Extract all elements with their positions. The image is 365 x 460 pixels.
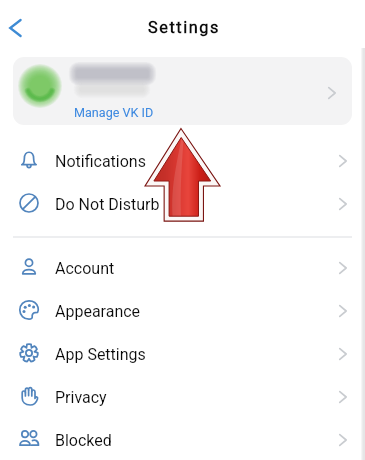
staticText: Account bbox=[55, 259, 115, 278]
button[interactable]: Appearance bbox=[0, 288, 365, 331]
staticText: Notifications bbox=[55, 152, 146, 171]
staticText: Privacy bbox=[55, 388, 107, 407]
staticText: App Settings bbox=[55, 345, 146, 364]
button[interactable]: Notifications bbox=[0, 138, 365, 181]
staticText: Manage VK ID bbox=[74, 105, 154, 120]
button[interactable]: Account bbox=[0, 245, 365, 288]
button[interactable]: Privacy bbox=[0, 374, 365, 417]
button[interactable]: Blocked bbox=[0, 417, 365, 460]
button[interactable]: Back bbox=[0, 9, 34, 47]
staticText: Appearance bbox=[55, 302, 141, 321]
staticText: Do Not Disturb bbox=[55, 195, 160, 214]
staticText: Blocked bbox=[55, 431, 112, 450]
button[interactable]: App Settings bbox=[0, 331, 365, 374]
staticText: Settings bbox=[148, 18, 220, 37]
button[interactable]: Do Not Disturb bbox=[0, 181, 365, 224]
button[interactable]: Manage VK ID bbox=[13, 57, 352, 125]
